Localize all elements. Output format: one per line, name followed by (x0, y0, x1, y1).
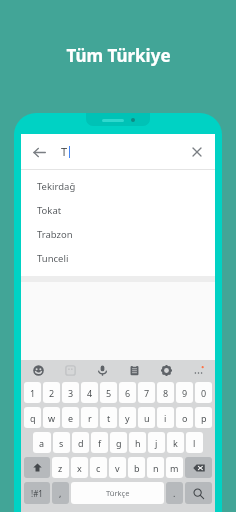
button[interactable]: Back (26, 139, 52, 165)
staticText: w (48, 412, 56, 424)
button[interactable]: a (33, 432, 51, 453)
button[interactable]: Backspace (185, 457, 212, 478)
button[interactable]: Settings (158, 362, 174, 378)
button[interactable]: !#1 (24, 482, 50, 504)
staticText: t (107, 412, 111, 424)
staticText: Tunceli (37, 252, 69, 265)
button[interactable]: Tokat (21, 198, 215, 222)
staticText: n (153, 462, 159, 474)
staticText: 3 (68, 387, 74, 399)
staticText: 4 (87, 387, 93, 399)
staticText: q (30, 412, 36, 424)
staticText: 1 (30, 387, 36, 399)
button[interactable]: z (52, 457, 69, 478)
staticText: r (88, 412, 92, 424)
button[interactable]: Tekirdağ (21, 174, 215, 198)
button[interactable]: 7 (138, 382, 155, 403)
staticText: !#1 (31, 488, 43, 499)
staticText: m (170, 462, 179, 474)
button[interactable]: Trabzon (21, 222, 215, 246)
staticText: T (61, 144, 68, 159)
staticText: i (164, 412, 167, 424)
button[interactable]: f (91, 432, 108, 453)
button[interactable]: e (62, 407, 79, 428)
staticText: v (115, 462, 120, 474)
button[interactable]: . (166, 482, 183, 504)
staticText: 9 (182, 387, 188, 399)
staticText: o (182, 412, 188, 424)
button[interactable]: l (186, 432, 203, 453)
staticText: j (155, 437, 158, 449)
button[interactable]: j (148, 432, 165, 453)
staticText: Tekirdağ (37, 180, 76, 193)
button[interactable]: s (53, 432, 70, 453)
button[interactable]: 5 (100, 382, 117, 403)
button[interactable]: r (81, 407, 98, 428)
staticText: 6 (125, 387, 131, 399)
staticText: 0 (201, 387, 207, 399)
staticText: y (125, 412, 130, 424)
button[interactable]: Emoji (30, 362, 46, 378)
button[interactable]: 8 (157, 382, 174, 403)
staticText: b (134, 462, 140, 474)
staticText: u (144, 412, 150, 424)
button[interactable]: k (167, 432, 184, 453)
staticText: , (59, 487, 62, 499)
staticText: . (173, 487, 176, 499)
staticText: d (78, 437, 84, 449)
staticText: c (96, 462, 101, 474)
button[interactable]: w (43, 407, 60, 428)
button[interactable]: g (110, 432, 127, 453)
button[interactable]: 2 (43, 382, 60, 403)
button[interactable]: q (24, 407, 41, 428)
button[interactable]: 1 (24, 382, 41, 403)
button[interactable]: Shift (24, 457, 50, 478)
button[interactable]: , (52, 482, 69, 504)
staticText: l (193, 437, 196, 449)
staticText: p (201, 412, 207, 424)
button[interactable]: 6 (119, 382, 136, 403)
staticText: 7 (144, 387, 150, 399)
staticText: k (173, 437, 178, 449)
button[interactable]: 9 (176, 382, 193, 403)
button[interactable]: 4 (81, 382, 98, 403)
staticText: Trabzon (37, 228, 73, 241)
button[interactable]: 0 (195, 382, 212, 403)
button[interactable]: Türkçe (71, 482, 164, 504)
button[interactable]: h (129, 432, 146, 453)
button[interactable]: d (72, 432, 89, 453)
staticText: Türkçe (106, 488, 130, 498)
staticText: Tokat (37, 204, 62, 217)
button[interactable]: y (119, 407, 136, 428)
button[interactable]: v (109, 457, 126, 478)
button[interactable]: Search (185, 482, 212, 504)
staticText: 2 (49, 387, 55, 399)
button[interactable]: Tunceli (21, 246, 215, 270)
button[interactable]: m (166, 457, 183, 478)
staticText: e (68, 412, 74, 424)
button[interactable]: Stickers (62, 362, 78, 378)
button[interactable]: t (100, 407, 117, 428)
staticText: Tüm Türkiye (66, 44, 171, 67)
button[interactable]: i (157, 407, 174, 428)
button[interactable]: Voice input (94, 362, 110, 378)
button[interactable]: o (176, 407, 193, 428)
button[interactable]: u (138, 407, 155, 428)
staticText: 8 (163, 387, 169, 399)
staticText: x (77, 462, 82, 474)
staticText: 5 (106, 387, 112, 399)
staticText: f (98, 437, 102, 449)
button[interactable]: p (195, 407, 212, 428)
button[interactable]: n (147, 457, 164, 478)
staticText: h (135, 437, 141, 449)
staticText: g (116, 437, 122, 449)
button[interactable]: c (90, 457, 107, 478)
button[interactable]: Clear (185, 140, 209, 164)
button[interactable]: More options (190, 362, 206, 378)
button[interactable]: b (128, 457, 145, 478)
button[interactable]: 3 (62, 382, 79, 403)
button[interactable]: Clipboard (126, 362, 142, 378)
staticText: z (58, 462, 63, 474)
button[interactable]: x (71, 457, 88, 478)
staticText: a (39, 437, 45, 449)
